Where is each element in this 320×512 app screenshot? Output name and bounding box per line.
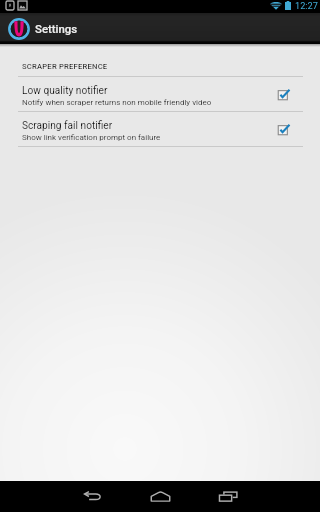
staticText: 12:27 (295, 0, 318, 11)
button[interactable]: Settings (0, 13, 320, 44)
staticText: Notify when scraper returns non mobile f… (22, 98, 212, 107)
staticText: Settings (35, 22, 78, 35)
staticText: Low quality notifier (22, 85, 108, 97)
button[interactable]: Recent apps (213, 481, 243, 512)
button[interactable]: Back (77, 481, 107, 512)
staticText: Scraping fail notifier (22, 120, 113, 132)
button[interactable]: Home (145, 481, 175, 512)
button[interactable]: Toggle setting (274, 119, 294, 139)
staticText: SCRAPER PREFERENCE (22, 62, 108, 71)
button[interactable]: Scraping fail notifier (0, 112, 320, 146)
button[interactable]: Toggle setting (274, 84, 294, 104)
staticText: Show link verification prompt on failure (22, 133, 161, 142)
button[interactable]: Low quality notifier (0, 77, 320, 111)
